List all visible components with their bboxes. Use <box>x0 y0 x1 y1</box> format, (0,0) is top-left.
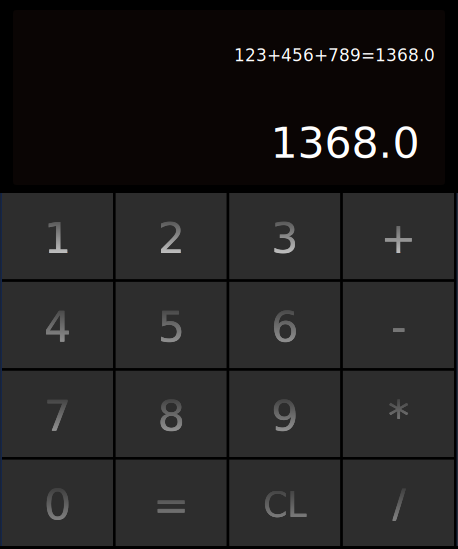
button[interactable]: 9 <box>229 371 340 457</box>
staticText: 0 <box>44 480 71 530</box>
staticText: / <box>391 480 405 530</box>
staticText: 8 <box>158 391 185 441</box>
button[interactable]: 6 <box>229 282 340 368</box>
staticText: 0 <box>44 480 71 530</box>
staticText: 9 <box>271 391 298 441</box>
staticText: 2 <box>158 213 185 263</box>
staticText: 8 <box>158 391 185 441</box>
button[interactable]: = <box>116 460 227 546</box>
staticText: CL <box>263 485 306 525</box>
staticText: 7 <box>44 391 71 441</box>
staticText: 5 <box>158 302 185 352</box>
staticText: 9 <box>271 391 298 441</box>
button[interactable]: / <box>343 460 454 546</box>
staticText: 2 <box>158 213 185 263</box>
staticText: 9 <box>271 391 298 441</box>
staticText: 2 <box>158 213 185 263</box>
staticText: - <box>391 302 406 352</box>
staticText: 5 <box>158 302 185 352</box>
staticText: 6 <box>271 302 298 352</box>
staticText: 123+456+789=1368.0 <box>234 46 435 65</box>
staticText: - <box>391 302 406 352</box>
staticText: CL <box>263 485 306 525</box>
staticText: = <box>153 480 189 530</box>
staticText: = <box>153 480 189 530</box>
staticText: * <box>388 391 409 441</box>
staticText: 2 <box>158 213 185 263</box>
button[interactable]: 3 <box>229 193 340 279</box>
staticText: 8 <box>158 391 185 441</box>
staticText: 1 <box>44 213 71 263</box>
button[interactable]: 2 <box>116 193 227 279</box>
staticText: 4 <box>44 302 71 352</box>
button[interactable]: 8 <box>116 371 227 457</box>
staticText: - <box>391 302 406 352</box>
staticText: / <box>391 480 405 530</box>
staticText: 5 <box>158 302 185 352</box>
staticText: 2 <box>158 213 185 263</box>
staticText: CL <box>263 485 306 525</box>
staticText: - <box>391 302 406 352</box>
button[interactable]: CL <box>229 460 340 546</box>
staticText: - <box>391 302 406 352</box>
staticText: = <box>153 480 189 530</box>
staticText: 1 <box>44 213 71 263</box>
staticText: 2 <box>158 213 185 263</box>
staticText: 0 <box>44 480 71 530</box>
staticText: CL <box>263 485 306 525</box>
staticText: = <box>153 480 189 530</box>
staticText: - <box>391 302 406 352</box>
staticText: CL <box>263 485 306 525</box>
staticText: 6 <box>271 302 298 352</box>
button[interactable]: - <box>343 282 454 368</box>
staticText: 2 <box>158 213 185 263</box>
staticText: 3 <box>271 213 298 263</box>
staticText: CL <box>263 485 306 525</box>
staticText: 1 <box>44 213 71 263</box>
staticText: 3 <box>271 213 298 263</box>
staticText: 9 <box>271 391 298 441</box>
button[interactable]: + <box>343 193 454 279</box>
staticText: * <box>388 391 409 441</box>
button[interactable]: 5 <box>116 282 227 368</box>
button[interactable]: 1 <box>2 193 113 279</box>
staticText: 8 <box>158 391 185 441</box>
staticText: - <box>391 302 406 352</box>
staticText: + <box>380 213 416 263</box>
staticText: 1 <box>44 213 71 263</box>
staticText: 8 <box>158 391 185 441</box>
staticText: 4 <box>44 302 71 352</box>
staticText: + <box>380 213 416 263</box>
staticText: 3 <box>271 213 298 263</box>
button[interactable]: 4 <box>2 282 113 368</box>
staticText: CL <box>263 485 306 525</box>
staticText: * <box>388 391 409 441</box>
staticText: 6 <box>271 302 298 352</box>
staticText: + <box>380 213 416 263</box>
staticText: 7 <box>44 391 71 441</box>
staticText: 0 <box>44 480 71 530</box>
button[interactable]: 0 <box>2 460 113 546</box>
staticText: 7 <box>44 391 71 441</box>
staticText: 9 <box>271 391 298 441</box>
staticText: 4 <box>44 302 71 352</box>
staticText: * <box>388 391 409 441</box>
staticText: 3 <box>271 213 298 263</box>
staticText: 3 <box>271 213 298 263</box>
staticText: * <box>388 391 409 441</box>
staticText: 3 <box>271 213 298 263</box>
staticText: 9 <box>271 391 298 441</box>
staticText: = <box>153 480 189 530</box>
staticText: + <box>380 213 416 263</box>
button[interactable]: 7 <box>2 371 113 457</box>
staticText: 7 <box>44 391 71 441</box>
button[interactable]: * <box>343 371 454 457</box>
staticText: 9 <box>271 391 298 441</box>
staticText: 1 <box>44 213 71 263</box>
staticText: 2 <box>158 213 185 263</box>
staticText: 9 <box>271 391 298 441</box>
staticText: 1 <box>44 213 71 263</box>
staticText: 3 <box>271 213 298 263</box>
staticText: 6 <box>271 302 298 352</box>
staticText: 8 <box>158 391 185 441</box>
